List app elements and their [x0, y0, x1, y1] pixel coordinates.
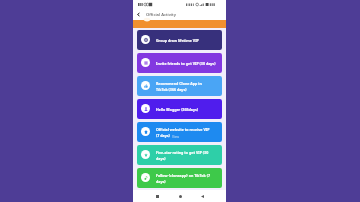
- staticText: Group draw lifetime VIP: [156, 38, 199, 43]
- staticText: View: [172, 134, 180, 138]
- staticText: (7 days): [156, 133, 170, 138]
- button[interactable]: Follow {cloneapp} on TikTok (7: [137, 168, 222, 188]
- staticText: Official Activity: [146, 12, 176, 18]
- staticText: Recommend Clone App in: [156, 81, 202, 86]
- button[interactable]: Official website to receive VIP: [137, 122, 222, 142]
- staticText: Five-star rating to get VIP (30: [156, 150, 209, 155]
- staticText: TikTok (366 days): [156, 87, 187, 92]
- button[interactable]: Home: [176, 192, 184, 200]
- button[interactable]: Group draw lifetime VIP: [137, 30, 222, 50]
- staticText: Follow {cloneapp} on TikTok (7: [156, 173, 211, 178]
- button[interactable]: Recommend Clone App in: [137, 76, 222, 96]
- staticText: days): [156, 156, 166, 161]
- button[interactable]: Recent apps: [153, 192, 161, 200]
- button[interactable]: Invite friends to get VIP (30 days): [137, 53, 222, 73]
- staticText: Hello Blogger (365days): [156, 107, 199, 112]
- staticText: Official website to receive VIP: [156, 127, 210, 132]
- button[interactable]: Back: [134, 10, 143, 19]
- staticText: days): [156, 179, 166, 184]
- staticText: Invite friends to get VIP (30 days): [156, 61, 216, 66]
- button[interactable]: Hello Blogger (365days): [137, 99, 222, 119]
- button[interactable]: Back: [198, 192, 206, 200]
- button[interactable]: Five-star rating to get VIP (30: [137, 145, 222, 165]
